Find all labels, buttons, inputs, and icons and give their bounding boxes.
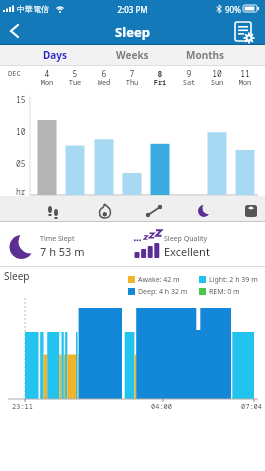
staticText: 4: [37, 68, 57, 79]
button[interactable]: Days: [30, 45, 80, 65]
staticText: 10: [16, 126, 26, 137]
staticText: Fri: [148, 78, 172, 88]
staticText: Sleep: [0, 23, 265, 41]
staticText: Months: [186, 48, 225, 62]
staticText: REM: 0 m: [209, 287, 240, 297]
staticText: 23:11: [12, 402, 33, 412]
staticText: 90%: [225, 4, 241, 15]
button[interactable]: Months: [179, 45, 231, 65]
staticText: 15: [16, 94, 26, 105]
staticText: Weeks: [116, 48, 149, 62]
staticText: 10: [207, 68, 227, 79]
staticText: 07:04: [241, 402, 262, 412]
button[interactable]: [129, 196, 177, 221]
staticText: 中華電信: [17, 4, 49, 14]
staticText: 04:00: [151, 402, 172, 412]
staticText: Mon: [233, 78, 257, 88]
staticText: 05: [16, 158, 26, 169]
staticText: Light: 2 h 39 m: [209, 275, 258, 285]
staticText: Excellent: [164, 244, 210, 259]
staticText: Sun: [205, 78, 229, 88]
staticText: Sleep Quality: [164, 234, 208, 244]
staticText: 8: [150, 68, 170, 79]
staticText: 9: [179, 68, 199, 79]
staticText: 5: [65, 68, 85, 79]
staticText: Deep: 4 h 32 m: [138, 287, 188, 297]
button[interactable]: [2, 20, 30, 44]
button[interactable]: [0, 18, 265, 44]
staticText: Tue: [63, 78, 87, 88]
staticText: hr: [16, 186, 26, 197]
staticText: 7 h 53 m: [40, 244, 85, 259]
staticText: Sleep: [4, 269, 30, 283]
staticText: 6: [94, 68, 114, 79]
button[interactable]: [230, 19, 260, 44]
button[interactable]: [178, 196, 226, 221]
button[interactable]: [227, 196, 265, 221]
staticText: 7: [122, 68, 142, 79]
staticText: 2:03 PM: [0, 4, 265, 15]
staticText: Thu: [120, 78, 144, 88]
button[interactable]: Weeks: [106, 45, 158, 65]
staticText: DEC: [8, 69, 21, 79]
staticText: Wed: [92, 78, 116, 88]
staticText: 11: [235, 68, 255, 79]
staticText: Mon: [35, 78, 59, 88]
button[interactable]: [31, 196, 79, 221]
staticText: Sat: [177, 78, 201, 88]
staticText: Days: [43, 48, 68, 62]
staticText: Time Slept: [40, 234, 75, 244]
button[interactable]: [80, 196, 128, 221]
staticText: Awake: 42 m: [138, 275, 180, 285]
